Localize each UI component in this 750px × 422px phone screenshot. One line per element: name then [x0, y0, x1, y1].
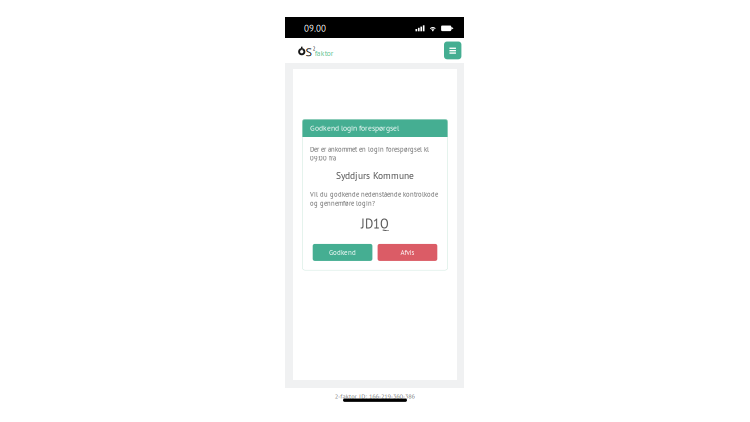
- staticText: Der er ankommet en login forespørgsel kl…: [310, 145, 429, 162]
- button[interactable]: Godkend: [313, 244, 372, 261]
- staticText: Godkend: [329, 248, 356, 257]
- staticText: Vil du godkende nedenstående kontrolkode…: [310, 190, 438, 207]
- staticText: Afvis: [400, 248, 414, 257]
- staticText: 2: [313, 46, 316, 52]
- staticText: faktor: [315, 48, 334, 58]
- staticText: 09.00: [304, 23, 326, 34]
- staticText: S: [305, 44, 312, 60]
- staticText: Syddjurs Kommune: [336, 169, 414, 182]
- staticText: 2-faktor ID: 166-219-360-386: [335, 392, 414, 400]
- button[interactable]: Menu: [444, 41, 461, 59]
- button[interactable]: Afvis: [378, 244, 437, 261]
- staticText: Godkend login forespørgsel: [310, 123, 399, 133]
- staticText: JD1Q: [361, 215, 389, 232]
